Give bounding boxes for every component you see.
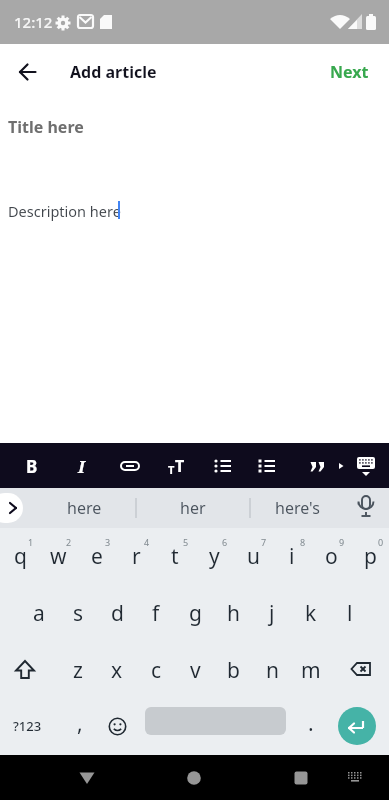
button[interactable]: I <box>61 446 101 486</box>
button[interactable]: h <box>214 588 252 638</box>
button[interactable] <box>346 446 386 486</box>
button[interactable]: n <box>253 645 291 695</box>
button[interactable]: b <box>214 645 252 695</box>
button[interactable]: o <box>312 531 350 581</box>
button[interactable]: e <box>78 531 116 581</box>
staticText: u <box>247 542 260 571</box>
staticText: z <box>73 656 83 685</box>
staticText: Title here <box>8 116 84 138</box>
button[interactable]: j <box>253 588 291 638</box>
staticText: e <box>91 542 103 571</box>
staticText: 4 <box>144 536 150 548</box>
button[interactable]: q <box>1 531 39 581</box>
button[interactable]: Next <box>322 53 377 91</box>
button[interactable]: g <box>176 588 214 638</box>
button[interactable] <box>3 645 47 695</box>
staticText: l <box>347 599 353 628</box>
button[interactable]: s <box>59 588 97 638</box>
staticText: 7 <box>261 536 267 548</box>
button[interactable]: k <box>292 588 330 638</box>
button[interactable] <box>0 493 23 523</box>
staticText: b <box>227 656 240 685</box>
button[interactable] <box>298 446 338 486</box>
staticText: 12:12 <box>14 12 53 32</box>
button[interactable] <box>8 52 48 92</box>
button[interactable] <box>335 758 375 798</box>
staticText: m <box>301 656 321 685</box>
button[interactable]: m <box>292 645 330 695</box>
button[interactable]: c <box>137 645 175 695</box>
staticText: Add article <box>70 61 157 83</box>
button[interactable]: f <box>137 588 175 638</box>
staticText: f <box>152 599 160 628</box>
button[interactable] <box>338 707 376 745</box>
staticText: . <box>308 709 314 738</box>
button[interactable]: B <box>12 446 52 486</box>
button[interactable]: d <box>98 588 136 638</box>
button[interactable]: ?123 <box>5 701 49 751</box>
staticText: B <box>26 455 38 478</box>
staticText: ?123 <box>13 717 42 735</box>
staticText: k <box>305 599 317 628</box>
staticText: i <box>289 542 295 571</box>
staticText: x <box>111 656 123 685</box>
staticText: s <box>73 599 84 628</box>
staticText: w <box>50 542 67 571</box>
button[interactable]: w <box>39 531 77 581</box>
staticText: v <box>190 656 201 685</box>
button[interactable]: r <box>117 531 155 581</box>
staticText: Description here <box>8 201 121 221</box>
staticText: p <box>364 542 377 571</box>
staticText: d <box>111 599 124 628</box>
button[interactable] <box>247 446 287 486</box>
staticText: h <box>227 599 240 628</box>
button[interactable]: l <box>331 588 369 638</box>
staticText: 3 <box>105 536 111 548</box>
staticText: g <box>189 599 202 628</box>
staticText: 5 <box>183 536 189 548</box>
staticText: I <box>78 455 85 478</box>
button[interactable]: her <box>136 488 250 528</box>
button[interactable]: i <box>273 531 311 581</box>
button[interactable] <box>110 446 150 486</box>
button[interactable]: u <box>234 531 272 581</box>
staticText: here <box>67 497 102 519</box>
button[interactable]: x <box>98 645 136 695</box>
button[interactable]: here's <box>250 488 344 528</box>
button[interactable] <box>203 446 243 486</box>
button[interactable] <box>281 758 321 798</box>
button[interactable]: v <box>176 645 214 695</box>
button[interactable]: T <box>156 446 196 486</box>
staticText: 6 <box>222 536 228 548</box>
button[interactable] <box>67 758 107 798</box>
button[interactable] <box>95 701 139 751</box>
button[interactable]: z <box>59 645 97 695</box>
button[interactable]: . <box>292 698 330 748</box>
button[interactable]: y <box>195 531 233 581</box>
staticText: c <box>151 656 162 685</box>
staticText: 1 <box>28 536 34 548</box>
staticText: T <box>168 462 175 477</box>
staticText: 8 <box>300 536 306 548</box>
staticText: y <box>209 542 220 571</box>
staticText: Next <box>330 61 369 83</box>
staticText: r <box>132 542 141 571</box>
staticText: a <box>33 599 45 628</box>
button[interactable]: a <box>20 588 58 638</box>
staticText: her <box>180 497 206 519</box>
button[interactable]: p <box>351 531 389 581</box>
staticText: t <box>171 542 179 571</box>
button[interactable]: , <box>61 698 99 748</box>
button[interactable] <box>339 645 383 695</box>
staticText: 2 <box>66 536 72 548</box>
button[interactable]: t <box>156 531 194 581</box>
staticText: , <box>77 709 83 738</box>
staticText: T <box>175 455 185 477</box>
staticText: here's <box>275 497 320 519</box>
button[interactable] <box>321 446 361 486</box>
staticText: j <box>269 599 275 628</box>
staticText: o <box>325 542 338 571</box>
button[interactable] <box>174 758 214 798</box>
button[interactable]: here <box>27 488 141 528</box>
